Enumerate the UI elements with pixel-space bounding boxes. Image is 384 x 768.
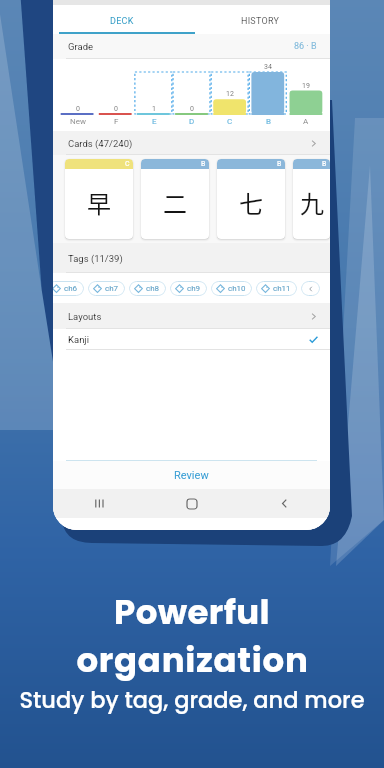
button[interactable]: Grade [53, 34, 330, 59]
staticText: ch10 [228, 284, 246, 293]
button[interactable]: More tags [301, 281, 320, 296]
button[interactable]: HISTORY [191, 5, 330, 34]
staticText: ch11 [273, 284, 291, 293]
staticText: B [277, 160, 282, 168]
button[interactable]: B [217, 159, 285, 239]
button[interactable]: Recent apps [53, 489, 146, 518]
staticText: Review [174, 469, 209, 482]
staticText: 二 [163, 185, 187, 220]
button[interactable]: C [65, 159, 133, 239]
staticText: ch7 [105, 284, 119, 293]
staticText: HISTORY [241, 16, 280, 27]
staticText: ch6 [64, 284, 78, 293]
staticText: E [152, 117, 157, 126]
staticText: ch8 [146, 284, 160, 293]
staticText: 86 · B [294, 41, 317, 52]
button[interactable]: ch11 [256, 281, 297, 296]
button[interactable]: Kanji [53, 329, 330, 350]
button[interactable]: Review [53, 461, 330, 489]
button[interactable]: Tags (11/39) [53, 243, 330, 273]
staticText: 早 [87, 185, 111, 220]
staticText: B [266, 117, 271, 126]
button[interactable]: ch10 [211, 281, 252, 296]
staticText: 九 [300, 185, 324, 220]
staticText: Grade [68, 41, 94, 52]
staticText: F [114, 117, 119, 126]
staticText: DECK [110, 16, 134, 27]
staticText: C [227, 117, 233, 126]
staticText: D [189, 117, 195, 126]
staticText: 12 [226, 90, 234, 98]
staticText: A [303, 117, 309, 126]
button[interactable]: Back [238, 489, 330, 518]
staticText: B [322, 160, 327, 168]
staticText: ch9 [187, 284, 201, 293]
button[interactable]: DECK [53, 5, 191, 34]
staticText: 19 [302, 82, 310, 90]
button[interactable]: ch8 [129, 281, 166, 296]
button[interactable]: ch7 [88, 281, 125, 296]
staticText: 1 [152, 105, 156, 113]
button[interactable]: ch6 [53, 281, 84, 296]
staticText: Kanji [68, 334, 89, 345]
staticText: organization [76, 636, 309, 684]
staticText: 34 [264, 63, 272, 71]
staticText: 七 [239, 185, 263, 220]
staticText: 0 [76, 105, 80, 113]
staticText: Layouts [68, 311, 102, 322]
staticText: Cards (47/240) [68, 138, 133, 149]
button[interactable]: Home [146, 489, 238, 518]
button[interactable]: Cards (47/240) [53, 131, 330, 155]
button[interactable]: Layouts [53, 303, 330, 329]
staticText: New [70, 117, 86, 126]
staticText: C [125, 160, 130, 168]
staticText: Powerful [114, 588, 270, 636]
staticText: Tags (11/39) [68, 253, 123, 264]
staticText: 0 [190, 105, 194, 113]
staticText: Study by tag, grade, and more [19, 684, 365, 715]
button[interactable]: B [293, 159, 330, 239]
staticText: B [201, 160, 206, 168]
button[interactable]: B [141, 159, 209, 239]
button[interactable]: ch9 [170, 281, 207, 296]
staticText: 0 [114, 105, 118, 113]
